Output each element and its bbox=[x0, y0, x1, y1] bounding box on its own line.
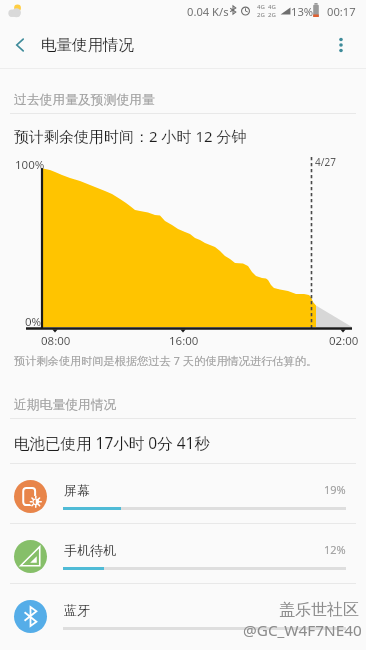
staticText: 手机待机 bbox=[64, 542, 116, 558]
button[interactable]: 屏幕 bbox=[0, 463, 366, 523]
staticText: 0% bbox=[25, 314, 42, 330]
staticText: 12% bbox=[324, 542, 346, 557]
staticText: 100% bbox=[15, 157, 45, 173]
staticText: 02:00 bbox=[329, 333, 359, 349]
staticText: 08:00 bbox=[41, 333, 71, 349]
button[interactable]: 手机待机 bbox=[0, 523, 366, 583]
button[interactable]: 蓝牙 bbox=[0, 583, 366, 643]
staticText: 4/27 bbox=[315, 155, 336, 169]
staticText: 预计剩余使用时间是根据您过去 7 天的使用情况进行估算的。 bbox=[14, 353, 318, 368]
staticText: 00:17 bbox=[327, 4, 356, 19]
staticText: @GC_W4F7NE40 bbox=[243, 620, 362, 641]
staticText: 16:00 bbox=[169, 333, 199, 349]
staticText: 2G bbox=[257, 11, 265, 19]
staticText: 13% bbox=[291, 4, 314, 19]
staticText: 电量使用情况 bbox=[41, 35, 134, 55]
staticText: 4G bbox=[268, 3, 276, 11]
staticText: 盖乐世社区 bbox=[279, 600, 359, 620]
button[interactable]: More options bbox=[322, 26, 360, 64]
button[interactable]: Back bbox=[1, 26, 39, 64]
staticText: 0.04 K/s bbox=[187, 4, 229, 19]
staticText: 屏幕 bbox=[64, 482, 90, 498]
staticText: 近期电量使用情况 bbox=[14, 397, 117, 413]
staticText: 19% bbox=[324, 482, 346, 497]
staticText: 过去使用量及预测使用量 bbox=[14, 92, 155, 108]
staticText: 2G bbox=[268, 11, 276, 19]
staticText: 电池已使用 17小时 0分 41秒 bbox=[14, 432, 210, 453]
staticText: 4G bbox=[257, 3, 265, 11]
staticText: 预计剩余使用时间：2 小时 12 分钟 bbox=[14, 126, 247, 146]
staticText: 蓝牙 bbox=[64, 602, 90, 618]
